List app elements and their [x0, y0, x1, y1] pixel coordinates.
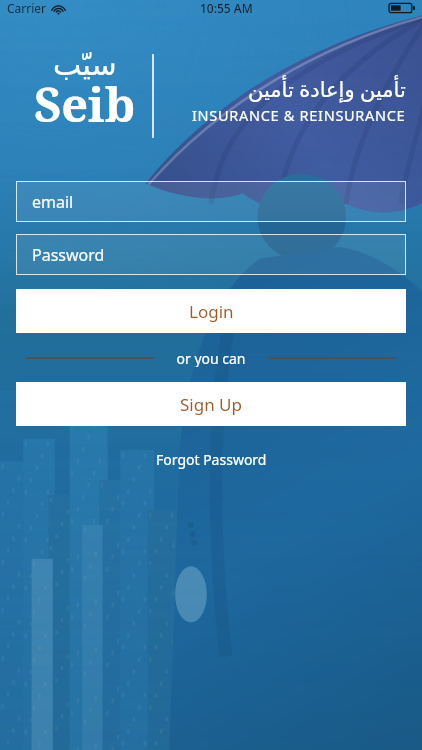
staticText: Password: [32, 244, 105, 266]
button[interactable]: Sign Up: [16, 382, 406, 426]
staticText: 10:55 AM: [200, 0, 253, 16]
staticText: Login: [189, 300, 234, 323]
staticText: Forgot Password: [156, 450, 267, 469]
button[interactable]: Login: [16, 289, 406, 333]
staticText: سيّب: [53, 47, 117, 82]
staticText: or you can: [176, 349, 246, 367]
staticText: Seib: [34, 72, 136, 136]
button[interactable]: Forgot Password: [0, 444, 422, 475]
staticText: INSURANCE & REINSURANCE: [192, 105, 406, 125]
staticText: Carrier: [7, 0, 47, 16]
staticText: Sign Up: [180, 393, 242, 416]
staticText: تأمين وإعادة تأمين: [248, 75, 406, 104]
staticText: email: [32, 191, 74, 213]
button[interactable]: Password: [16, 234, 406, 275]
button[interactable]: email: [16, 181, 406, 222]
